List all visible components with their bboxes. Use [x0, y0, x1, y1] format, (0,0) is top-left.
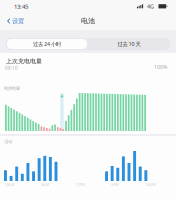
staticText: 12PM [75, 182, 85, 187]
staticText: 12AM [145, 182, 156, 187]
button[interactable]: 过去 24 小时 [6, 38, 88, 50]
staticText: 13:45 [14, 2, 28, 11]
staticText: 12AM [4, 182, 15, 187]
staticText: 100% [154, 63, 167, 71]
staticText: 4G [147, 3, 154, 10]
staticText: 活动 [4, 139, 12, 144]
staticText: 08:10 [5, 65, 18, 71]
button[interactable]: 设置 [3, 13, 28, 29]
button[interactable]: 过去 10 天 [88, 38, 170, 50]
staticText: 电池 [81, 17, 95, 25]
staticText: 过去 24 小时 [33, 40, 61, 48]
staticText: 电池电量 [4, 86, 20, 91]
staticText: 上次充电电量 [6, 57, 42, 65]
staticText: 过去 10 天 [117, 40, 140, 48]
staticText: 6PM [111, 182, 119, 187]
staticText: 设置 [12, 17, 24, 25]
staticText: 6AM [41, 182, 50, 187]
